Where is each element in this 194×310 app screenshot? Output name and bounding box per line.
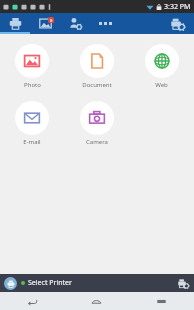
button[interactable]: E-mail [0,97,64,150]
button[interactable]: Document [64,40,129,93]
button[interactable]: Select Printer [0,274,194,292]
button[interactable]: Back [0,292,64,310]
button[interactable]: Print [0,13,30,34]
button[interactable]: Recent apps [129,292,194,310]
button[interactable]: More options [90,13,120,34]
staticText: Select Printer [28,278,72,288]
button[interactable]: Printer settings [162,13,194,34]
button[interactable]: Accounts [60,13,90,34]
staticText: Photo [24,81,41,89]
button[interactable]: Home [64,292,129,310]
button[interactable]: Gallery [30,13,60,34]
button[interactable]: Camera [64,97,129,150]
button[interactable]: Web [129,40,194,93]
button[interactable]: Printer settings [176,276,190,290]
button[interactable]: Photo [0,40,64,93]
staticText: 0 [50,18,53,23]
staticText: Document [82,81,112,89]
staticText: Camera [86,138,108,146]
staticText: 3:32 PM [164,2,191,12]
staticText: E-mail [23,138,41,146]
staticText: Web [155,81,168,89]
